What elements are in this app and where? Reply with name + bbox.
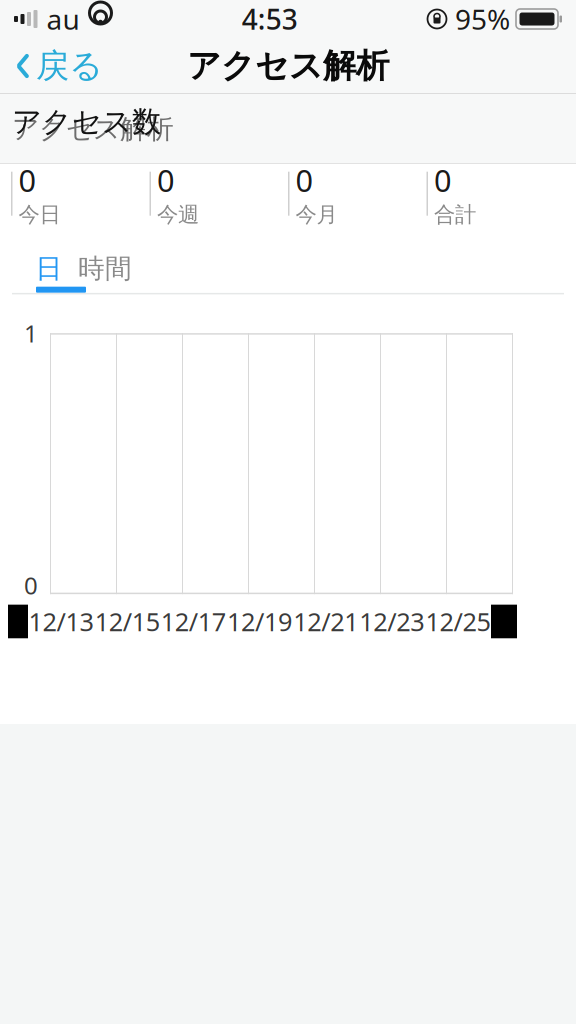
staticText: 12/15 [95,605,160,638]
staticText: 0 [24,569,38,601]
staticText: 12/21 [293,605,358,638]
staticText: アクセス数 [12,104,161,140]
staticText: 12/25 [425,605,490,638]
staticText: 0 [434,160,452,200]
staticText: 0 [18,160,36,200]
button[interactable]: 戻る [0,37,113,94]
staticText: 0 [295,160,313,200]
staticText: 今月 [295,201,337,228]
staticText: 12/17 [161,605,226,638]
staticText: 合計 [434,201,476,228]
staticText: au [46,0,79,38]
staticText: 95% [455,0,510,38]
staticText: 12/13 [29,605,94,638]
staticText: 4:53 [242,0,298,38]
staticText: 今日 [18,201,60,228]
button[interactable]: 時間 [74,252,136,286]
staticText: 12/19 [227,605,292,638]
staticText: 時間 [78,252,132,285]
staticText: 日 [35,252,62,285]
staticText: アクセス解析 [187,45,389,86]
staticText: 0 [157,160,175,200]
staticText: 戻る [36,45,103,86]
staticText: 1 [24,317,38,349]
button[interactable]: 日 [24,252,74,286]
staticText: アクセス解析 [12,113,174,145]
staticText: 12/23 [359,605,424,638]
staticText: 今週 [157,201,199,228]
